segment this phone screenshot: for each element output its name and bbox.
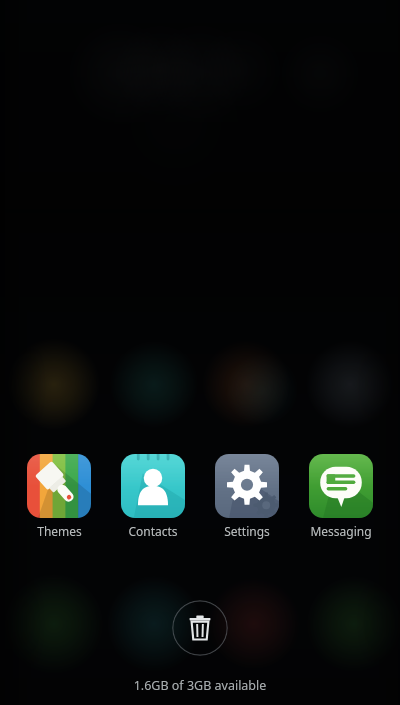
- staticText: 1.6GB of 3GB available: [0, 677, 400, 694]
- staticText: Contacts: [128, 523, 178, 539]
- button[interactable]: Themes: [18, 452, 100, 539]
- button[interactable]: Remove: [172, 600, 228, 656]
- staticText: Settings: [224, 523, 270, 539]
- staticText: Messaging: [310, 523, 372, 539]
- button[interactable]: Messaging: [300, 452, 382, 539]
- button[interactable]: Settings: [206, 452, 288, 539]
- staticText: Themes: [37, 523, 82, 539]
- button[interactable]: Contacts: [112, 452, 194, 539]
